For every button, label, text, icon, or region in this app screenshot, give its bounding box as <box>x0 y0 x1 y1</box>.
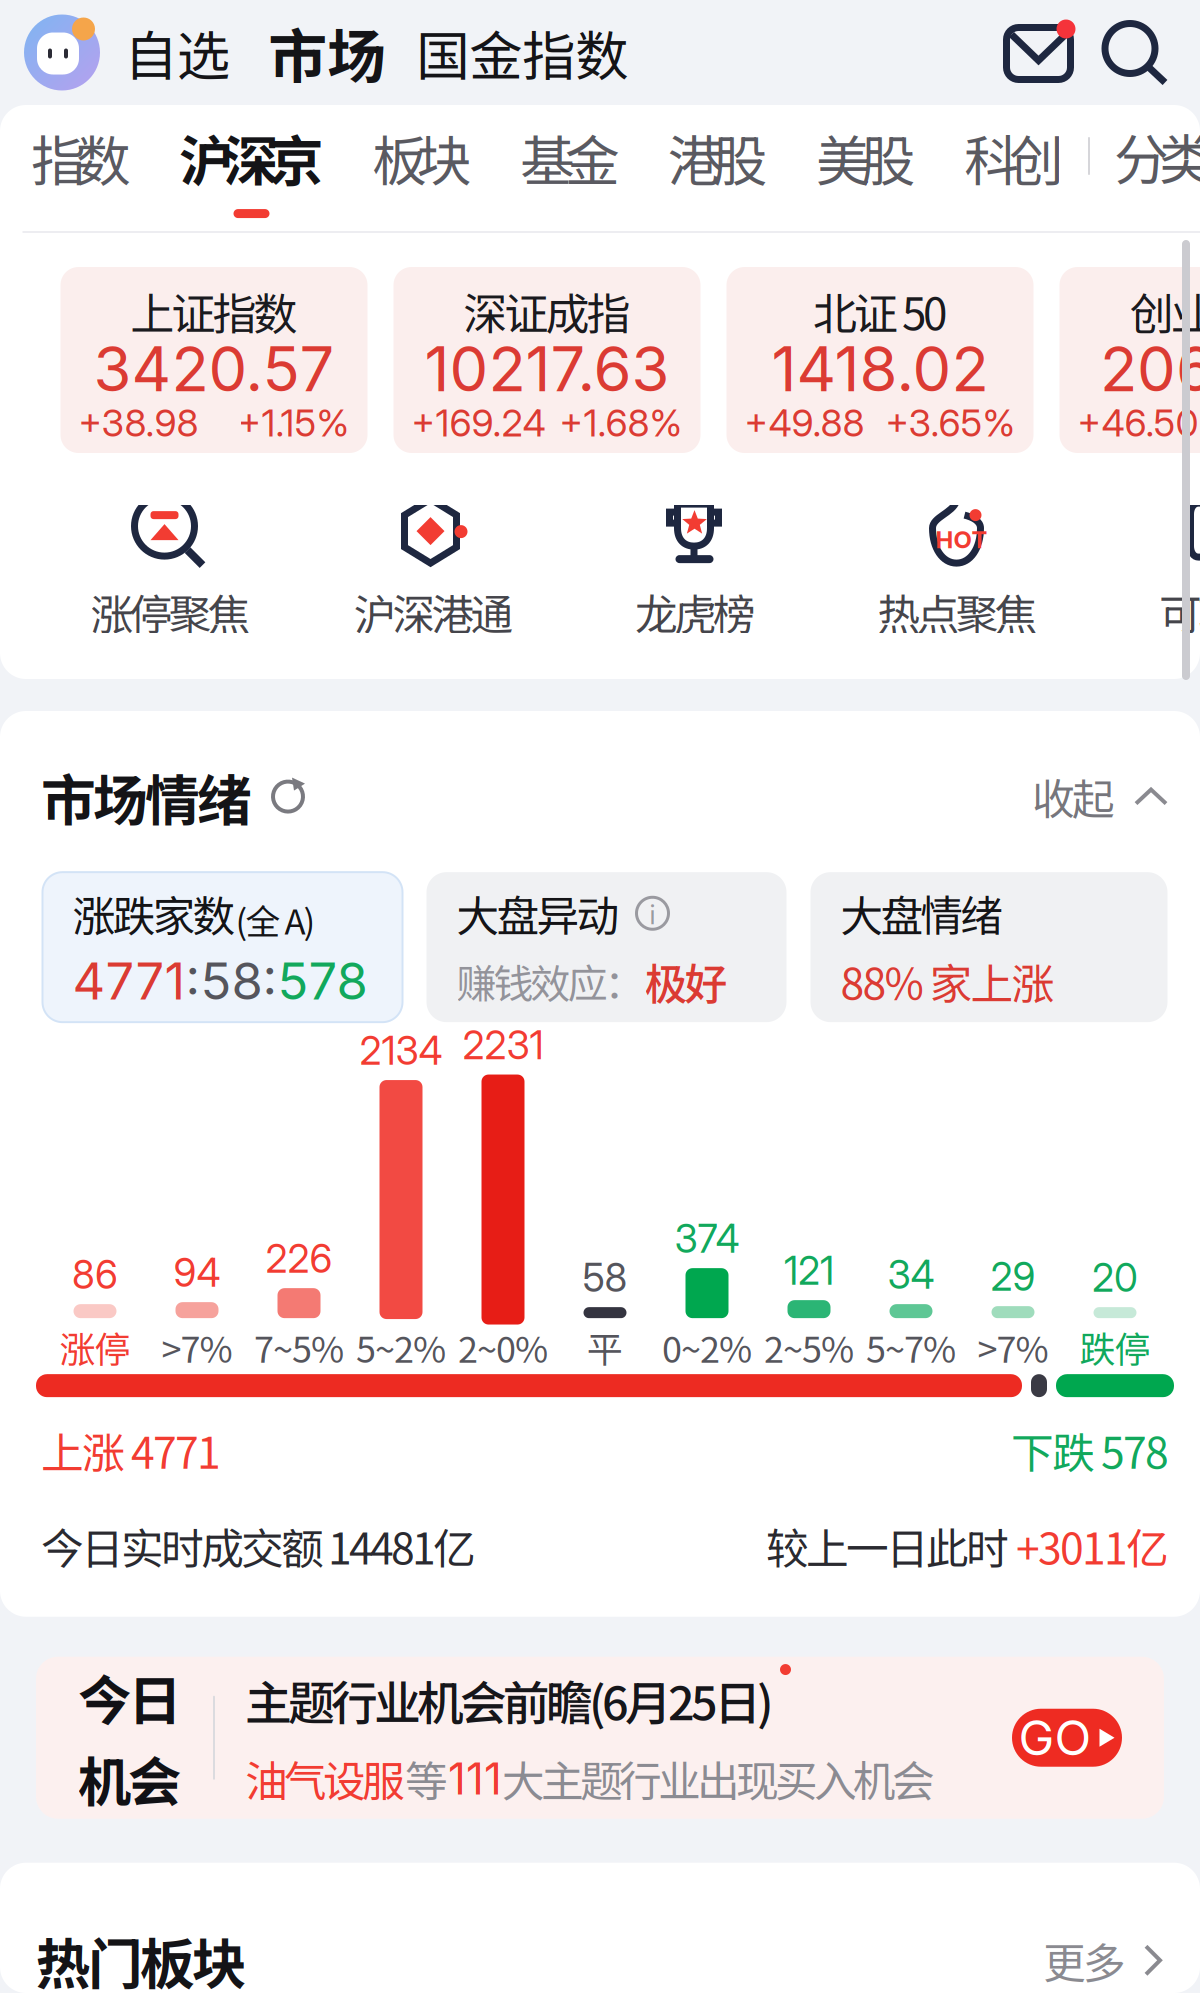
button[interactable]: 港股 <box>644 118 792 218</box>
staticText: +169.24 <box>411 400 545 446</box>
staticText: 2068.13 <box>1100 332 1200 406</box>
button[interactable]: 板块 <box>348 118 496 218</box>
button[interactable]: 沪深港通 <box>302 495 564 643</box>
staticText: 下跌 578 <box>1011 1419 1169 1481</box>
staticText: 科创 <box>964 118 1064 197</box>
button[interactable]: 大盘情绪 <box>810 872 1167 1022</box>
staticText: 5~2% <box>356 1321 446 1373</box>
staticText: 沪深港通 <box>353 581 513 643</box>
staticText: 自选 <box>124 14 230 91</box>
staticText: 今日实时成交额 14481亿 <box>41 1515 476 1577</box>
staticText: :58: <box>185 950 277 1012</box>
staticText: 2~5% <box>764 1321 854 1373</box>
staticText: 374 <box>674 1215 739 1262</box>
staticText: +38.98 <box>78 400 198 446</box>
button[interactable]: 深证成指 <box>393 267 700 453</box>
staticText: 龙虎榜 <box>635 581 756 643</box>
staticText: 油气设服 <box>245 1748 405 1809</box>
staticText: 10217.63 <box>424 332 669 406</box>
button[interactable]: 自选 <box>100 14 254 91</box>
staticText: 2~0% <box>458 1321 548 1373</box>
staticText: 市场 <box>268 10 386 95</box>
button[interactable]: 美股 <box>792 118 940 218</box>
staticText: (全 A) <box>235 894 315 944</box>
button[interactable]: Messages <box>1005 19 1074 85</box>
button[interactable]: Search <box>1074 19 1168 85</box>
staticText: 88% 家上涨 <box>840 950 1054 1012</box>
button[interactable]: 涨停聚焦 <box>39 495 301 643</box>
staticText: 1418.02 <box>771 332 988 406</box>
staticText: 平 <box>587 1321 623 1373</box>
button[interactable]: 国金指数 <box>400 14 644 91</box>
staticText: 主题行业机会前瞻(6月25日) <box>245 1666 774 1734</box>
staticText: 热点聚焦 <box>877 581 1037 643</box>
staticText: 收起 <box>1032 766 1115 827</box>
staticText: 赚钱效应： <box>456 952 644 1010</box>
staticText: 港股 <box>668 118 768 197</box>
button[interactable]: HOT <box>826 495 1088 643</box>
staticText: 涨停聚焦 <box>90 581 250 643</box>
staticText: 94 <box>173 1249 220 1296</box>
staticText: 111 <box>448 1752 502 1805</box>
button[interactable]: 大盘异动 <box>426 872 786 1022</box>
button[interactable]: 基金 <box>496 118 644 218</box>
staticText: 大主题行业出现买入机会 <box>502 1748 935 1809</box>
staticText: 沪深京 <box>179 118 324 197</box>
button[interactable]: 更多 <box>1043 1929 1164 1991</box>
button[interactable]: 科创 <box>940 118 1088 218</box>
staticText: 2134 <box>359 1027 442 1074</box>
staticText: 极好 <box>644 950 727 1012</box>
staticText: +3011亿 <box>1016 1515 1169 1577</box>
staticText: 基金 <box>520 118 620 197</box>
staticText: 跌停 <box>1079 1321 1150 1373</box>
button[interactable]: 收起 <box>1032 766 1169 827</box>
button[interactable]: 北证 50 <box>726 267 1033 453</box>
staticText: 0~2% <box>662 1321 752 1373</box>
staticText: i <box>649 895 656 932</box>
button[interactable]: 今日 <box>36 1657 1164 1819</box>
staticText: +3.65% <box>885 400 1015 446</box>
button[interactable]: 指数 <box>7 118 155 218</box>
staticText: 2231 <box>462 1022 543 1069</box>
staticText: >7% <box>977 1321 1048 1373</box>
staticText: HOT <box>935 525 987 554</box>
staticText: 更多 <box>1043 1929 1126 1991</box>
staticText: 创业板指 <box>1129 279 1200 343</box>
staticText: 86 <box>72 1251 118 1298</box>
button[interactable]: 创业板指 <box>1059 267 1200 453</box>
staticText: 今日 <box>78 1658 181 1736</box>
staticText: 涨跌家数 <box>72 883 235 944</box>
staticText: 3420.57 <box>93 332 334 406</box>
staticText: 等 <box>405 1748 448 1809</box>
staticText: 指数 <box>31 118 131 197</box>
button[interactable]: 分类 <box>1090 128 1200 208</box>
staticText: 市场情绪 <box>41 757 252 836</box>
staticText: 美股 <box>816 118 916 197</box>
staticText: 大盘异动 <box>456 882 619 944</box>
staticText: +1.15% <box>237 400 349 446</box>
staticText: 7~5% <box>254 1321 344 1373</box>
staticText: 20 <box>1092 1254 1138 1301</box>
staticText: 大盘情绪 <box>840 882 1003 944</box>
staticText: +49.88 <box>744 400 864 446</box>
staticText: 34 <box>887 1251 934 1298</box>
staticText: >7% <box>161 1321 232 1373</box>
staticText: 29 <box>990 1253 1035 1300</box>
button[interactable]: 涨跌家数 <box>42 872 402 1022</box>
staticText: 分类 <box>1114 116 1200 196</box>
staticText: 国金指数 <box>416 14 628 91</box>
button[interactable]: 上证指数 <box>60 267 367 453</box>
staticText: +1.68% <box>559 400 682 446</box>
button[interactable]: 市场 <box>254 10 400 95</box>
staticText: 上证指数 <box>130 279 297 343</box>
staticText: GO <box>1018 1709 1091 1767</box>
staticText: 热门板块 <box>36 1921 247 1993</box>
button[interactable]: 龙虎榜 <box>564 495 826 643</box>
staticText: 较上一日此时 <box>766 1515 1016 1577</box>
staticText: 121 <box>784 1247 834 1294</box>
button[interactable]: 沪深京 <box>155 118 348 218</box>
staticText: 板块 <box>372 118 472 197</box>
staticText: 涨停 <box>59 1321 130 1373</box>
staticText: 58 <box>582 1254 627 1301</box>
button[interactable]: 债 <box>1088 495 1200 643</box>
